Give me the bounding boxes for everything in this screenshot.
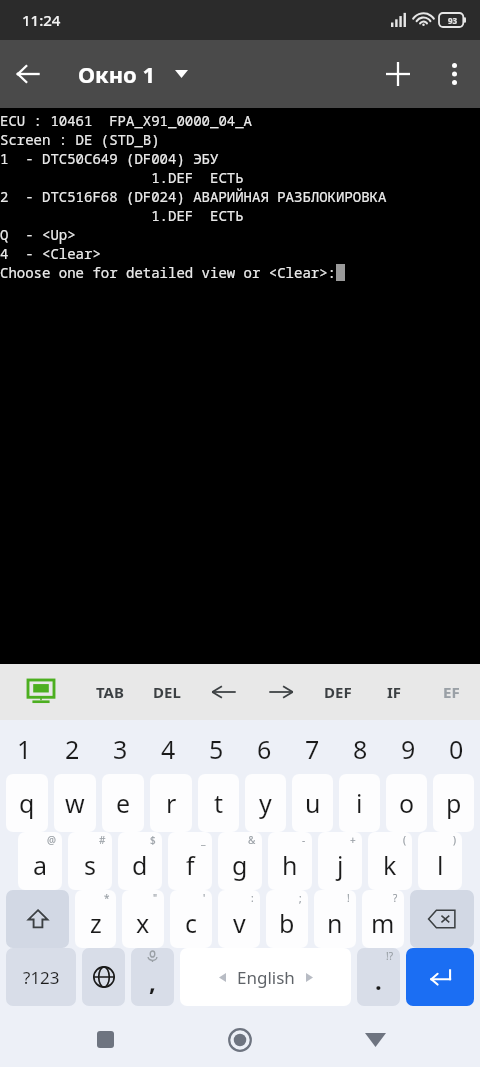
staticText: IF: [387, 682, 402, 702]
button[interactable]: IF: [366, 664, 423, 720]
button[interactable]: !?: [357, 948, 400, 1006]
staticText: b: [279, 906, 295, 940]
button[interactable]: Backspace: [410, 890, 474, 948]
staticText: 8: [353, 732, 368, 766]
staticText: s: [84, 848, 96, 882]
button[interactable]: 2: [48, 724, 96, 774]
button[interactable]: Hide keyboard: [345, 1012, 405, 1067]
staticText: Screen : DE (STD_B): [0, 130, 160, 149]
staticText: ): [453, 833, 456, 847]
button[interactable]: Shift: [6, 890, 69, 948]
staticText: .: [375, 964, 382, 997]
button[interactable]: o: [386, 774, 427, 832]
staticText: ?123: [23, 966, 60, 989]
button[interactable]: $: [118, 832, 162, 890]
button[interactable]: ?: [362, 890, 404, 948]
button[interactable]: Add: [374, 50, 422, 98]
staticText: ": [153, 891, 158, 905]
button[interactable]: Enter: [406, 948, 474, 1006]
staticText: 2 - DTC516F68 (DF024) АВАРИЙНАЯ РАЗБЛОКИ…: [0, 187, 387, 206]
button[interactable]: e: [102, 774, 144, 832]
button[interactable]: _: [168, 832, 212, 890]
button[interactable]: q: [6, 774, 48, 832]
staticText: f: [186, 848, 195, 882]
staticText: ,: [149, 965, 156, 998]
button[interactable]: r: [150, 774, 192, 832]
button[interactable]: &: [218, 832, 262, 890]
button[interactable]: :: [218, 890, 260, 948]
staticText: v: [233, 906, 246, 940]
button[interactable]: 1: [0, 724, 48, 774]
staticText: y: [259, 786, 272, 820]
button[interactable]: Change language: [82, 948, 125, 1006]
button[interactable]: u: [292, 774, 333, 832]
button[interactable]: #: [68, 832, 112, 890]
button[interactable]: -: [268, 832, 312, 890]
button[interactable]: English: [180, 948, 351, 1006]
button[interactable]: EF: [423, 664, 480, 720]
button[interactable]: ': [170, 890, 212, 948]
button[interactable]: 6: [240, 724, 288, 774]
button[interactable]: ,: [131, 948, 174, 1006]
staticText: &: [248, 833, 256, 847]
staticText: p: [446, 786, 462, 820]
button[interactable]: 7: [288, 724, 336, 774]
button[interactable]: i: [339, 774, 380, 832]
button[interactable]: Home: [210, 1012, 270, 1067]
staticText: ': [203, 891, 206, 905]
button[interactable]: 9: [384, 724, 432, 774]
button[interactable]: [252, 664, 309, 720]
staticText: 6: [257, 732, 272, 766]
staticText: -: [302, 833, 306, 847]
button[interactable]: t: [198, 774, 239, 832]
staticText: DEF: [324, 682, 352, 702]
staticText: _: [201, 833, 206, 847]
button[interactable]: (: [368, 832, 412, 890]
button[interactable]: ": [122, 890, 164, 948]
button[interactable]: Back: [0, 46, 56, 102]
button[interactable]: Terminal display: [0, 664, 82, 720]
button[interactable]: @: [18, 832, 62, 890]
staticText: ?: [393, 891, 398, 905]
staticText: u: [305, 786, 321, 820]
button[interactable]: ?123: [6, 948, 76, 1006]
button[interactable]: 5: [192, 724, 240, 774]
button[interactable]: Окно 1: [78, 59, 188, 89]
staticText: h: [282, 848, 298, 882]
staticText: 1.DEF ЕСТЬ: [0, 168, 244, 187]
button[interactable]: DEL: [138, 664, 195, 720]
button[interactable]: 4: [144, 724, 192, 774]
button[interactable]: w: [54, 774, 96, 832]
staticText: m: [371, 906, 395, 940]
staticText: @: [47, 833, 56, 847]
button[interactable]: 3: [96, 724, 144, 774]
button[interactable]: TAB: [82, 664, 138, 720]
button[interactable]: Recents: [75, 1012, 135, 1067]
button[interactable]: [195, 664, 252, 720]
staticText: $: [150, 833, 156, 847]
staticText: Q - <Up>: [0, 225, 76, 244]
staticText: z: [90, 906, 102, 940]
button[interactable]: *: [75, 890, 116, 948]
button[interactable]: !: [314, 890, 356, 948]
staticText: EF: [443, 682, 460, 702]
button[interactable]: 8: [336, 724, 384, 774]
button[interactable]: y: [245, 774, 286, 832]
button[interactable]: More options: [428, 48, 480, 100]
button[interactable]: p: [433, 774, 474, 832]
staticText: d: [132, 848, 148, 882]
button[interactable]: 0: [432, 724, 480, 774]
staticText: j: [337, 848, 344, 882]
staticText: 9: [401, 732, 416, 766]
staticText: 7: [305, 732, 320, 766]
button[interactable]: DEF: [309, 664, 366, 720]
staticText: *: [104, 891, 110, 905]
staticText: w: [65, 786, 85, 820]
button[interactable]: ;: [266, 890, 308, 948]
staticText: +: [350, 833, 356, 847]
button[interactable]: +: [318, 832, 362, 890]
staticText: (: [403, 833, 406, 847]
staticText: e: [116, 786, 131, 820]
button[interactable]: ): [418, 832, 462, 890]
staticText: 11:24: [22, 10, 61, 30]
